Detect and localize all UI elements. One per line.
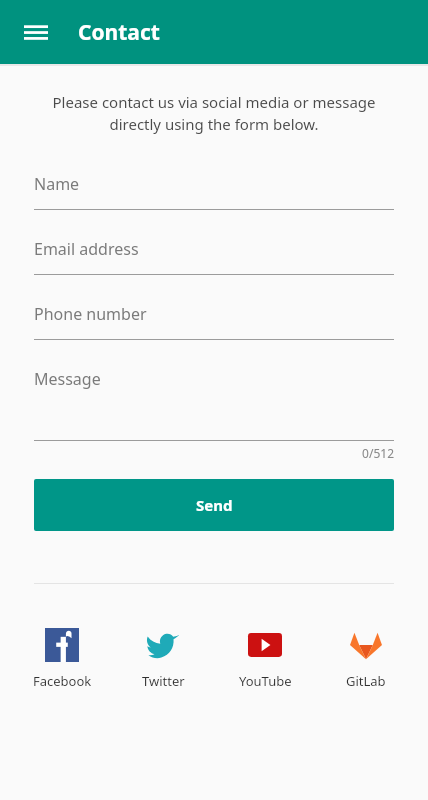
button[interactable]: Open navigation menu	[14, 10, 58, 54]
other: GitLab	[349, 628, 383, 662]
button[interactable]: Phone number	[34, 303, 394, 340]
button[interactable]: Facebook	[18, 626, 106, 690]
button[interactable]: Send	[34, 479, 394, 531]
staticText: Name	[34, 173, 80, 195]
button[interactable]: Twitter	[119, 626, 207, 690]
staticText: Twitter	[142, 672, 185, 690]
button[interactable]: Name	[34, 173, 394, 210]
staticText: Send	[196, 495, 233, 515]
staticText: Facebook	[33, 672, 92, 690]
other: YouTube	[248, 628, 282, 662]
staticText: Email address	[34, 238, 139, 260]
staticText: Phone number	[34, 303, 147, 325]
other: Twitter	[146, 628, 180, 662]
staticText: YouTube	[239, 672, 292, 690]
button[interactable]: Message	[34, 368, 394, 441]
staticText: Message	[34, 368, 101, 390]
staticText: GitLab	[346, 672, 386, 690]
staticText: Please contact us via social media or me…	[24, 92, 404, 135]
button[interactable]: YouTube	[221, 626, 309, 690]
button[interactable]: Email address	[34, 238, 394, 275]
staticText: 0/512	[34, 445, 394, 461]
other: Facebook	[45, 628, 79, 662]
button[interactable]: GitLab	[322, 626, 410, 690]
staticText: Contact	[78, 18, 160, 47]
